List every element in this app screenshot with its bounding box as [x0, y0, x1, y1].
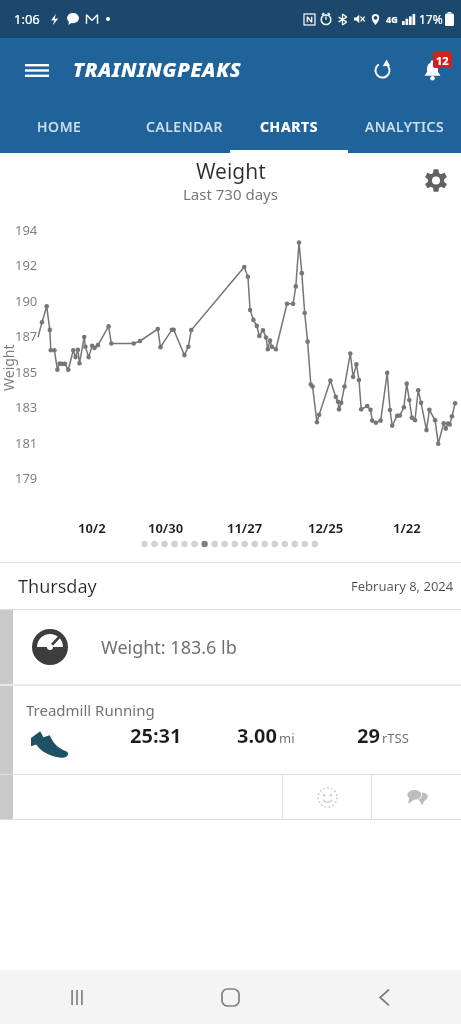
staticText: 4G [386, 13, 398, 25]
button[interactable]: CHARTS [230, 100, 348, 153]
staticText: Weight: 183.6 lb [101, 635, 237, 660]
button[interactable]: Comments [372, 775, 461, 819]
staticText: 187 [15, 327, 38, 345]
staticText: 10/2 [78, 519, 106, 537]
staticText: February 8, 2024 [351, 577, 454, 595]
staticText: 10/30 [148, 519, 184, 537]
staticText: Treadmill Running [26, 700, 155, 720]
button[interactable]: CALENDAR [119, 100, 249, 153]
staticText: Thursday [18, 574, 97, 599]
staticText: mi [279, 729, 295, 747]
staticText: CALENDAR [146, 117, 223, 136]
staticText: 17% [419, 11, 443, 27]
staticText: Last 730 days [183, 184, 278, 204]
staticText: 1:06 [14, 10, 40, 28]
staticText: CHARTS [260, 117, 318, 136]
staticText: Weight [0, 344, 18, 391]
staticText: Weight [196, 157, 266, 186]
staticText: 194 [15, 221, 38, 239]
staticText: 1/22 [393, 519, 421, 537]
staticText: ANALYTICS [365, 117, 445, 136]
staticText: 190 [15, 292, 38, 310]
staticText: 185 [15, 363, 38, 381]
button[interactable]: Add a reaction [283, 775, 371, 819]
staticText: 183 [15, 398, 38, 416]
button[interactable]: Treadmill Running [0, 686, 461, 819]
button[interactable]: Refresh [359, 47, 405, 93]
button[interactable]: Open navigation menu [13, 47, 60, 94]
button[interactable]: Recent apps [49, 970, 105, 1024]
staticText: 192 [15, 256, 38, 274]
staticText: 12 [436, 53, 449, 68]
staticText: 3.00 [237, 722, 277, 748]
staticText: rTSS [382, 729, 409, 747]
staticText: 181 [15, 434, 38, 452]
staticText: TRAININGPEAKS [73, 56, 242, 83]
staticText: 29 [357, 722, 380, 748]
staticText: 179 [15, 469, 38, 487]
button[interactable]: Chart settings [418, 162, 454, 198]
button[interactable]: Notifications, 12 new [409, 47, 455, 93]
staticText: HOME [37, 117, 82, 136]
button[interactable]: ANALYTICS [348, 100, 461, 153]
staticText: 12/25 [308, 519, 344, 537]
button[interactable]: HOME [0, 100, 119, 153]
button[interactable]: Weight: 183.6 lb [0, 610, 461, 684]
staticText: 11/27 [227, 519, 263, 537]
button[interactable]: Home [202, 970, 258, 1024]
button[interactable]: Back [356, 970, 412, 1024]
staticText: 25:31 [130, 722, 182, 748]
